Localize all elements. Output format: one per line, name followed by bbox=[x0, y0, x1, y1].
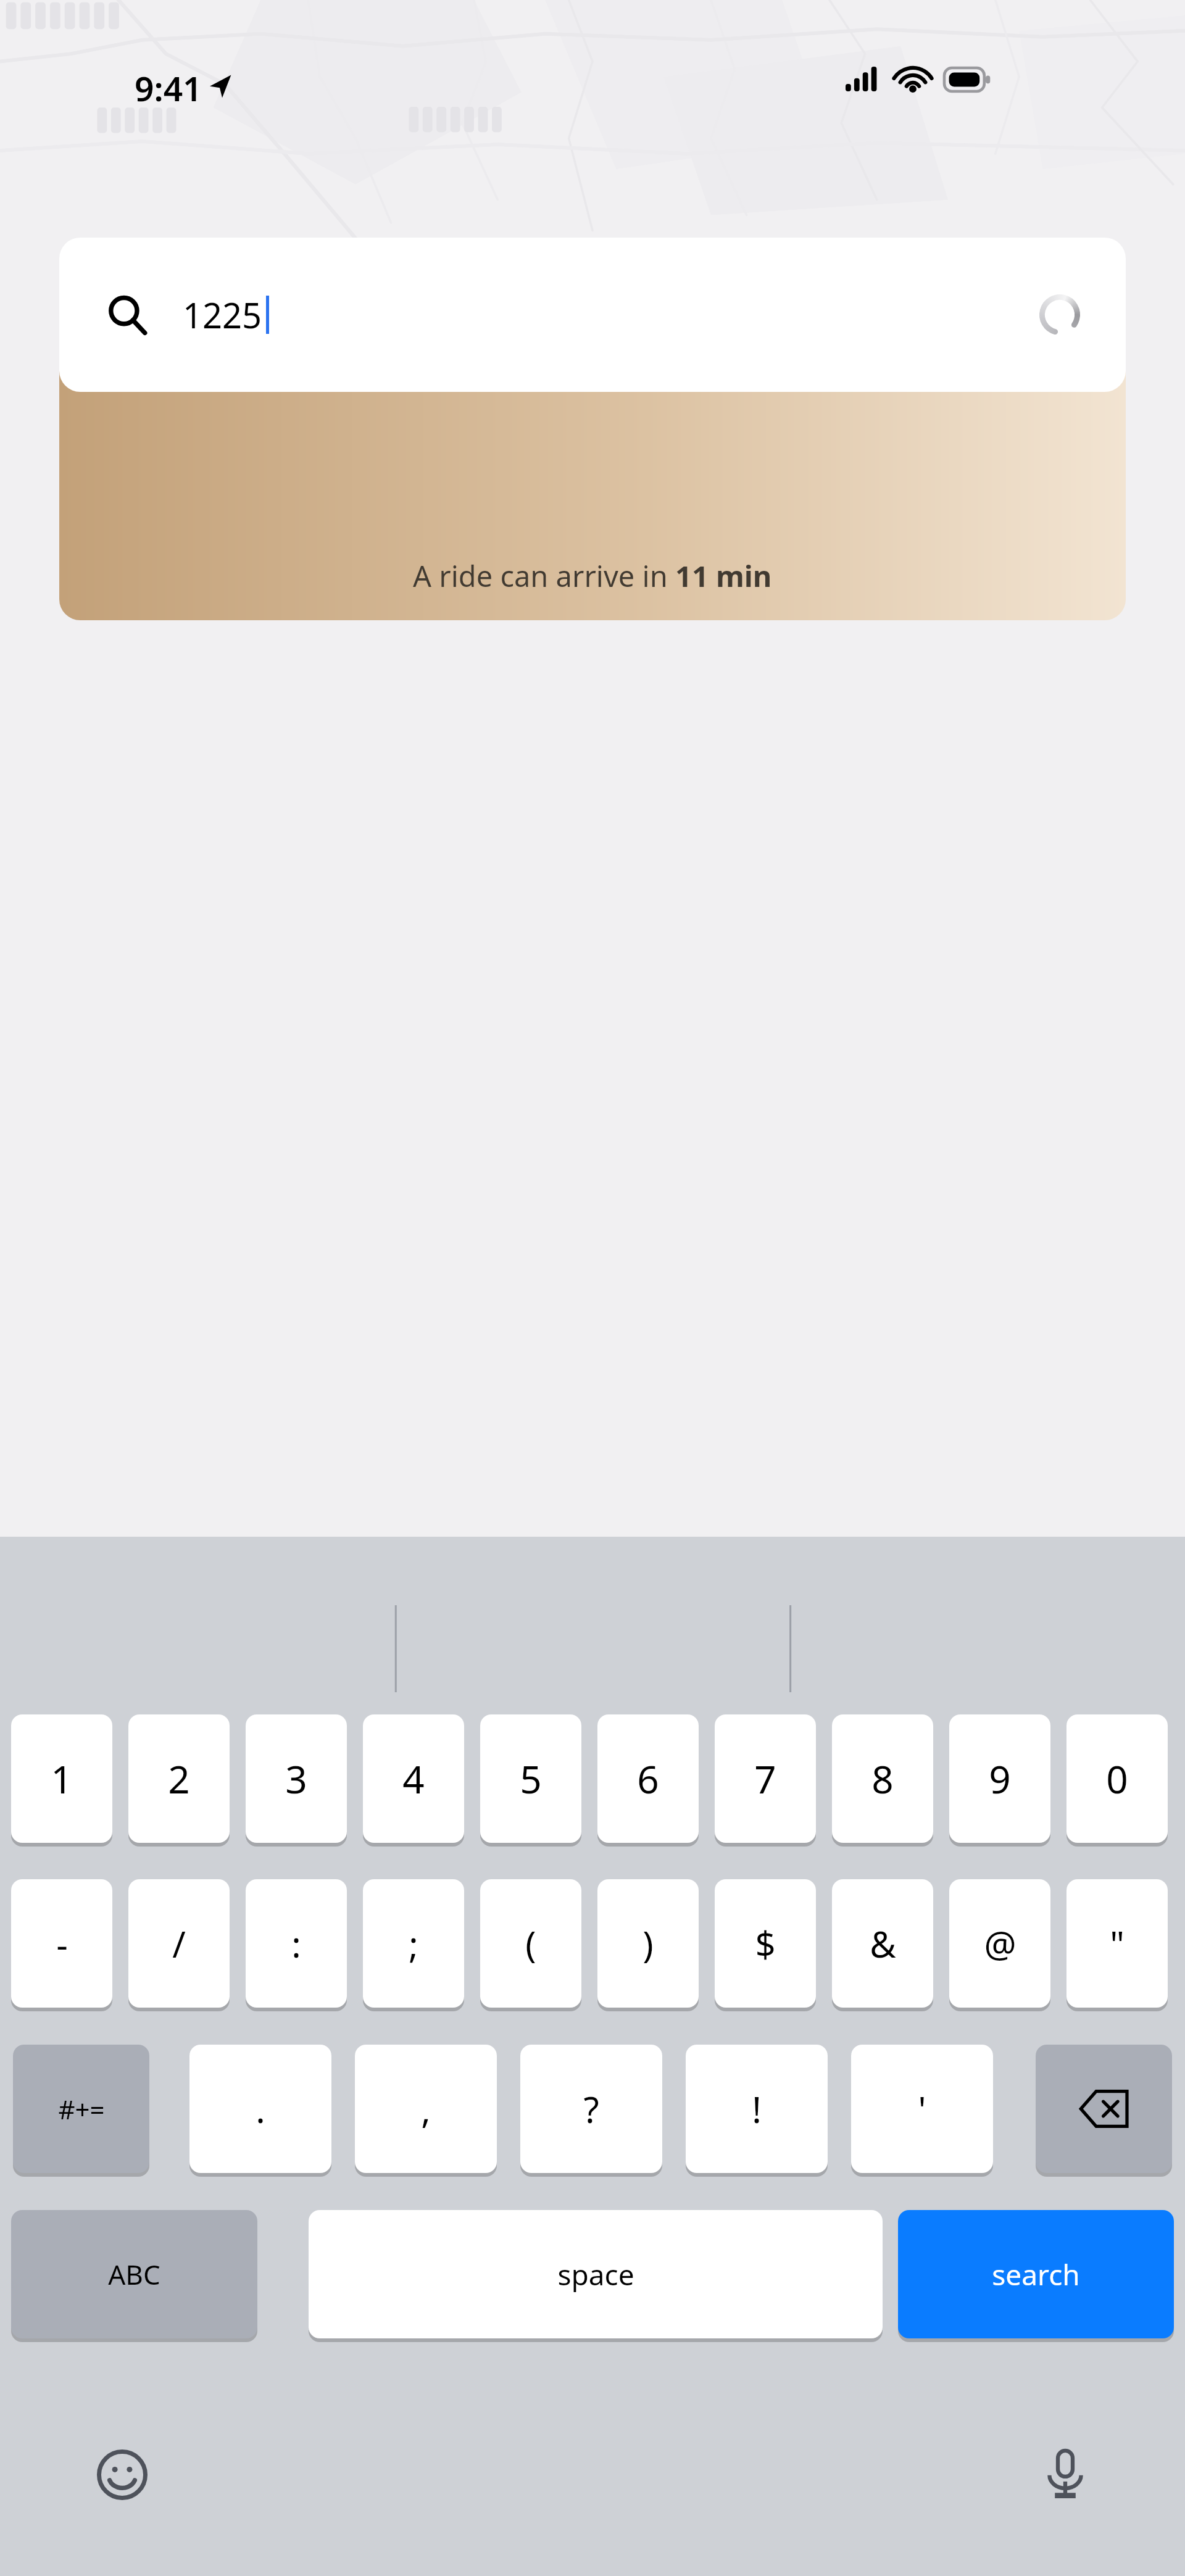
staticText: ( bbox=[525, 1919, 536, 1968]
button[interactable]: ' bbox=[851, 2045, 993, 2173]
staticText: 8 bbox=[871, 1753, 894, 1805]
button[interactable]: Dictation bbox=[1016, 2425, 1115, 2524]
staticText: / bbox=[172, 1919, 186, 1968]
staticText: & bbox=[870, 1919, 896, 1968]
staticText: $ bbox=[755, 1919, 776, 1968]
staticText: 4 bbox=[402, 1753, 425, 1805]
staticText: space bbox=[557, 2255, 634, 2294]
button[interactable]: & bbox=[832, 1879, 933, 2008]
staticText: 0 bbox=[1106, 1753, 1128, 1805]
button[interactable]: 6 bbox=[597, 1714, 699, 1843]
button[interactable]: Emoji keyboard bbox=[73, 2425, 172, 2524]
staticText: 3 bbox=[285, 1753, 307, 1805]
button[interactable]: ! bbox=[686, 2045, 828, 2173]
button[interactable]: 0 bbox=[1066, 1714, 1168, 1843]
staticText: ! bbox=[752, 2085, 762, 2134]
button[interactable]: " bbox=[1066, 1879, 1168, 2008]
button[interactable]: 9 bbox=[949, 1714, 1050, 1843]
staticText: , bbox=[421, 2085, 431, 2134]
button[interactable]: ; bbox=[363, 1879, 464, 2008]
button[interactable]: Backspace bbox=[1036, 2045, 1172, 2173]
staticText: @ bbox=[984, 1919, 1017, 1968]
staticText: #+= bbox=[58, 2092, 105, 2127]
button[interactable]: 3 bbox=[246, 1714, 347, 1843]
button[interactable]: 7 bbox=[715, 1714, 816, 1843]
button[interactable]: , bbox=[355, 2045, 497, 2173]
staticText: 2 bbox=[168, 1753, 190, 1805]
staticText: 1 bbox=[51, 1753, 73, 1805]
staticText: 6 bbox=[637, 1753, 659, 1805]
button[interactable]: - bbox=[11, 1879, 112, 2008]
button[interactable]: ? bbox=[520, 2045, 662, 2173]
button[interactable]: space bbox=[309, 2210, 883, 2338]
staticText: 7 bbox=[754, 1753, 776, 1805]
button[interactable]: 1225 bbox=[59, 238, 1126, 392]
button[interactable]: 1 bbox=[11, 1714, 112, 1843]
button[interactable]: A ride can arrive in bbox=[59, 336, 1126, 620]
button[interactable]: 8 bbox=[832, 1714, 933, 1843]
staticText: 9 bbox=[989, 1753, 1011, 1805]
button[interactable]: ( bbox=[480, 1879, 581, 2008]
staticText: 5 bbox=[520, 1753, 542, 1805]
staticText: 9:41 bbox=[135, 65, 202, 111]
button[interactable]: ) bbox=[597, 1879, 699, 2008]
button[interactable]: 4 bbox=[363, 1714, 464, 1843]
button[interactable]: : bbox=[246, 1879, 347, 2008]
button[interactable]: ABC bbox=[11, 2210, 257, 2338]
staticText: ? bbox=[583, 2085, 599, 2134]
button[interactable]: @ bbox=[949, 1879, 1050, 2008]
staticText: ) bbox=[642, 1919, 654, 1968]
button[interactable]: 2 bbox=[128, 1714, 230, 1843]
button[interactable]: #+= bbox=[13, 2045, 149, 2173]
staticText: : bbox=[291, 1919, 301, 1968]
staticText: ; bbox=[409, 1919, 418, 1968]
button[interactable]: / bbox=[128, 1879, 230, 2008]
button[interactable]: . bbox=[189, 2045, 331, 2173]
staticText: 1225 bbox=[183, 291, 262, 338]
staticText: search bbox=[992, 2255, 1080, 2294]
staticText: ' bbox=[918, 2085, 926, 2134]
button[interactable]: $ bbox=[715, 1879, 816, 2008]
staticText: 11 min bbox=[675, 556, 772, 596]
button[interactable]: 5 bbox=[480, 1714, 581, 1843]
staticText: - bbox=[56, 1919, 68, 1968]
staticText: A ride can arrive in bbox=[413, 556, 675, 596]
staticText: " bbox=[1110, 1919, 1125, 1968]
button[interactable]: search bbox=[898, 2210, 1174, 2338]
staticText: . bbox=[256, 2085, 265, 2134]
staticText: ABC bbox=[108, 2256, 160, 2293]
